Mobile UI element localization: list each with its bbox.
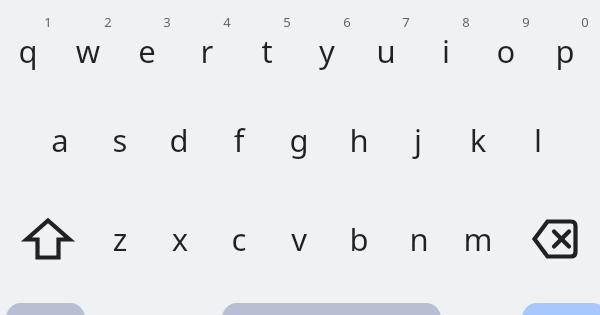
button[interactable]: s <box>91 100 149 180</box>
button[interactable]: x <box>151 199 209 279</box>
staticText: w <box>59 30 117 72</box>
staticText: s <box>91 119 149 161</box>
button[interactable]: Enter <box>522 303 600 315</box>
staticText: b <box>330 218 388 260</box>
staticText: k <box>449 119 507 161</box>
button[interactable]: Shift <box>13 204 83 274</box>
button[interactable]: h <box>330 100 388 180</box>
button[interactable]: f <box>210 100 268 180</box>
staticText: t <box>238 30 296 72</box>
staticText: 7 <box>377 13 435 31</box>
staticText: o <box>477 30 535 72</box>
staticText: 3 <box>138 13 196 31</box>
staticText: 1 <box>19 13 77 31</box>
staticText: h <box>330 119 388 161</box>
staticText: 8 <box>437 13 495 31</box>
button[interactable]: d <box>150 100 208 180</box>
staticText: 4 <box>198 13 256 31</box>
staticText: e <box>118 30 176 72</box>
staticText: 5 <box>258 13 316 31</box>
staticText: m <box>449 218 507 260</box>
staticText: y <box>298 30 356 72</box>
staticText: a <box>31 119 89 161</box>
button[interactable]: t <box>238 11 296 91</box>
button[interactable]: l <box>509 100 567 180</box>
staticText: l <box>509 119 567 161</box>
staticText: 2 <box>79 13 137 31</box>
button[interactable]: Space <box>222 303 441 315</box>
button[interactable]: n <box>390 199 448 279</box>
staticText: c <box>210 218 268 260</box>
staticText: p <box>536 30 594 72</box>
button[interactable]: j <box>389 100 447 180</box>
staticText: f <box>210 119 268 161</box>
staticText: v <box>270 218 328 260</box>
staticText: d <box>150 119 208 161</box>
staticText: g <box>270 119 328 161</box>
staticText: x <box>151 218 209 260</box>
button[interactable]: a <box>31 100 89 180</box>
staticText: n <box>390 218 448 260</box>
button[interactable]: q <box>0 11 57 91</box>
button[interactable]: v <box>270 199 328 279</box>
button[interactable]: m <box>449 199 507 279</box>
button[interactable]: r <box>178 11 236 91</box>
button[interactable]: u <box>357 11 415 91</box>
staticText: j <box>389 119 447 161</box>
button[interactable]: g <box>270 100 328 180</box>
button[interactable]: y <box>298 11 356 91</box>
button[interactable]: p <box>536 11 594 91</box>
button[interactable]: o <box>477 11 535 91</box>
button[interactable]: w <box>59 11 117 91</box>
button[interactable]: i <box>417 11 475 91</box>
staticText: z <box>91 218 149 260</box>
staticText: 6 <box>318 13 376 31</box>
staticText: i <box>417 30 475 72</box>
staticText: u <box>357 30 415 72</box>
button[interactable]: Symbols <box>6 303 85 315</box>
button[interactable]: b <box>330 199 388 279</box>
button[interactable]: c <box>210 199 268 279</box>
staticText: r <box>178 30 236 72</box>
staticText: q <box>0 30 57 72</box>
button[interactable]: e <box>118 11 176 91</box>
staticText: 0 <box>556 13 600 31</box>
button[interactable]: k <box>449 100 507 180</box>
button[interactable]: Backspace <box>518 204 590 274</box>
staticText: 9 <box>497 13 555 31</box>
button[interactable]: z <box>91 199 149 279</box>
